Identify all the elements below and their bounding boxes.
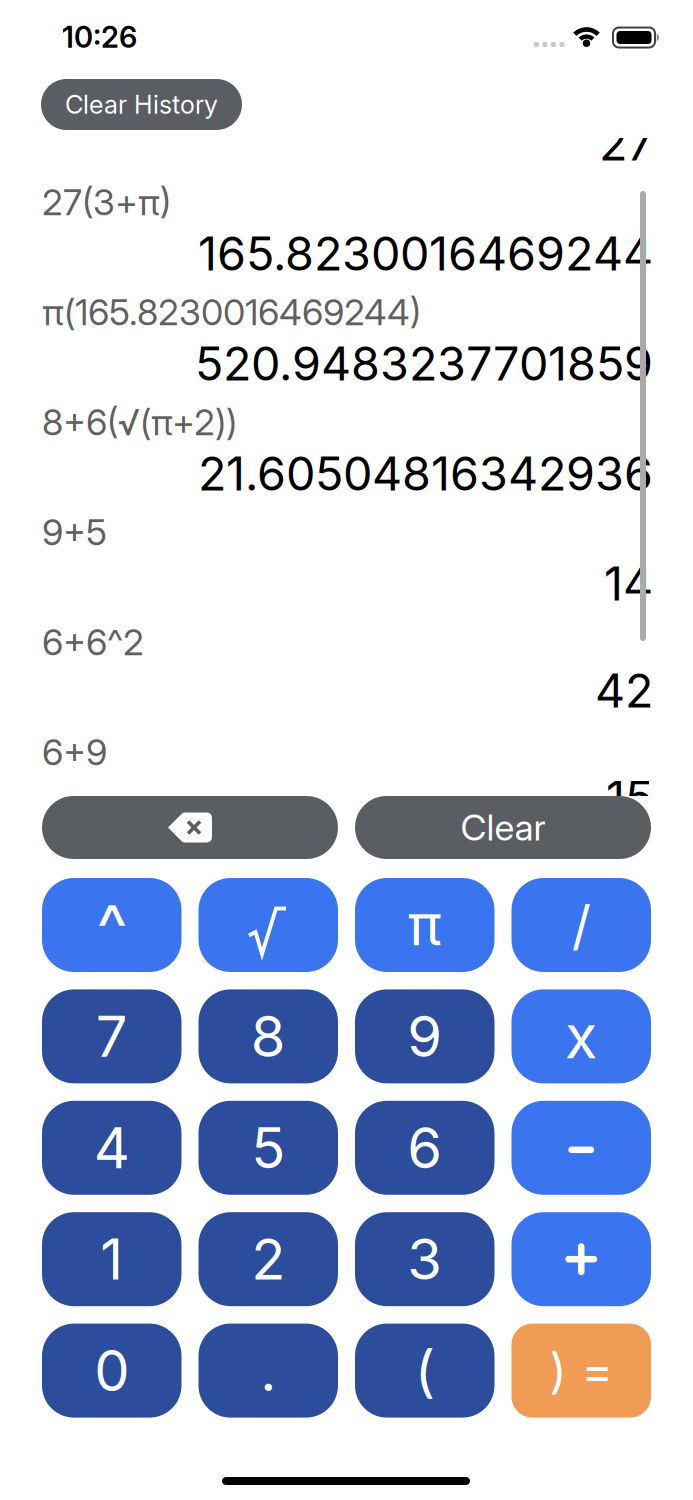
- button[interactable]: 0: [42, 1324, 181, 1418]
- button[interactable]: ^: [42, 878, 181, 972]
- staticText: Clear History: [65, 90, 218, 119]
- button[interactable]: ) =: [511, 1324, 651, 1418]
- staticText: 9+5: [42, 511, 107, 553]
- staticText: 9: [407, 1003, 442, 1069]
- button[interactable]: 8: [198, 989, 338, 1083]
- staticText: 6+9: [42, 731, 107, 773]
- button[interactable]: Clear: [355, 796, 651, 859]
- staticText: ^: [96, 889, 127, 967]
- staticText: 6: [407, 1115, 442, 1181]
- staticText: 21.60504816342936: [198, 446, 653, 501]
- staticText: .: [260, 1338, 276, 1404]
- staticText: 14: [604, 556, 653, 611]
- staticText: 15: [606, 770, 653, 825]
- staticText: 10:26: [62, 20, 137, 54]
- button[interactable]: 7: [42, 989, 181, 1083]
- staticText: (: [415, 1338, 435, 1404]
- button[interactable]: 5: [198, 1101, 338, 1195]
- staticText: 3: [407, 1226, 442, 1292]
- staticText: 8+6(√(π+2)): [42, 401, 237, 443]
- button[interactable]: 2: [198, 1212, 338, 1306]
- staticText: x: [565, 1001, 598, 1072]
- staticText: /: [572, 893, 591, 956]
- button[interactable]: 1: [42, 1212, 181, 1306]
- staticText: 0: [94, 1338, 129, 1404]
- button[interactable]: /: [511, 878, 651, 972]
- staticText: 6+6^2: [42, 621, 144, 663]
- staticText: 1: [100, 1226, 123, 1292]
- staticText: 165.8230016469244: [198, 226, 653, 281]
- button[interactable]: [511, 1101, 651, 1195]
- button[interactable]: x: [511, 989, 651, 1083]
- staticText: 42: [595, 663, 653, 718]
- button[interactable]: 9: [355, 989, 494, 1083]
- button[interactable]: .: [198, 1324, 338, 1418]
- button[interactable]: 6: [355, 1101, 494, 1195]
- staticText: π(165.8230016469244): [42, 291, 421, 333]
- staticText: Clear: [460, 806, 545, 849]
- staticText: 4: [94, 1115, 130, 1181]
- button[interactable]: 4: [42, 1101, 181, 1195]
- button[interactable]: 3: [355, 1212, 494, 1306]
- button[interactable]: [42, 796, 338, 859]
- staticText: 520.9483237701859: [195, 336, 653, 391]
- staticText: 27: [599, 116, 653, 171]
- button[interactable]: π: [355, 878, 494, 972]
- button[interactable]: (: [355, 1324, 494, 1418]
- button[interactable]: [198, 878, 338, 972]
- button[interactable]: [511, 1212, 651, 1306]
- staticText: 2: [251, 1226, 285, 1292]
- staticText: 8: [251, 1003, 286, 1069]
- staticText: ) =: [549, 1342, 613, 1399]
- staticText: π: [408, 892, 442, 958]
- staticText: 27(3+π): [42, 181, 171, 223]
- staticText: 5: [251, 1115, 285, 1181]
- button[interactable]: Clear History: [41, 79, 242, 130]
- staticText: 7: [96, 1003, 128, 1069]
